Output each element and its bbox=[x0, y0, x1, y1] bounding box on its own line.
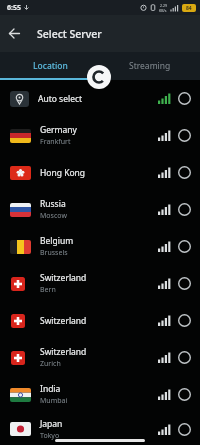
staticText: Japan bbox=[40, 418, 63, 430]
staticText: Moscow bbox=[40, 211, 67, 221]
staticText: Hong Kong bbox=[40, 167, 86, 179]
staticText: Select Server bbox=[37, 27, 102, 41]
staticText: Switzerland bbox=[40, 272, 87, 284]
staticText: Auto select bbox=[38, 93, 83, 105]
staticText: Frankfurt bbox=[40, 137, 71, 147]
button[interactable]: Japan bbox=[0, 413, 200, 445]
button[interactable]: Streaming bbox=[100, 52, 200, 80]
button[interactable]: Russia bbox=[0, 191, 200, 228]
button[interactable]: India bbox=[0, 376, 200, 413]
button[interactable]: Switzerland bbox=[0, 339, 200, 376]
button[interactable]: Location bbox=[0, 52, 100, 80]
staticText: Switzerland bbox=[40, 315, 87, 327]
button[interactable]: Belgium bbox=[0, 228, 200, 265]
staticText: India bbox=[40, 383, 61, 395]
staticText: 2.29 bbox=[160, 3, 167, 8]
staticText: Brussels bbox=[40, 248, 68, 258]
button[interactable]: Germany bbox=[0, 117, 200, 154]
staticText: Tokyo bbox=[40, 431, 60, 441]
staticText: Location bbox=[33, 60, 68, 72]
button[interactable] bbox=[9, 28, 20, 39]
staticText: Zurich bbox=[40, 359, 61, 369]
staticText: Russia bbox=[40, 198, 66, 210]
button[interactable]: Hong Kong bbox=[0, 154, 200, 191]
staticText: Streaming bbox=[129, 60, 171, 72]
staticText: Switzerland bbox=[40, 346, 87, 358]
staticText: Bern bbox=[40, 285, 56, 295]
staticText: KB/s bbox=[159, 8, 167, 13]
staticText: Belgium bbox=[40, 235, 74, 247]
staticText: 84 bbox=[186, 5, 192, 12]
staticText: Germany bbox=[40, 124, 77, 136]
button[interactable]: Switzerland bbox=[0, 265, 200, 302]
button[interactable]: Switzerland bbox=[0, 302, 200, 339]
button[interactable]: Auto select bbox=[0, 80, 200, 117]
staticText: 6:55 bbox=[7, 3, 21, 13]
staticText: Mumbai bbox=[40, 396, 68, 406]
